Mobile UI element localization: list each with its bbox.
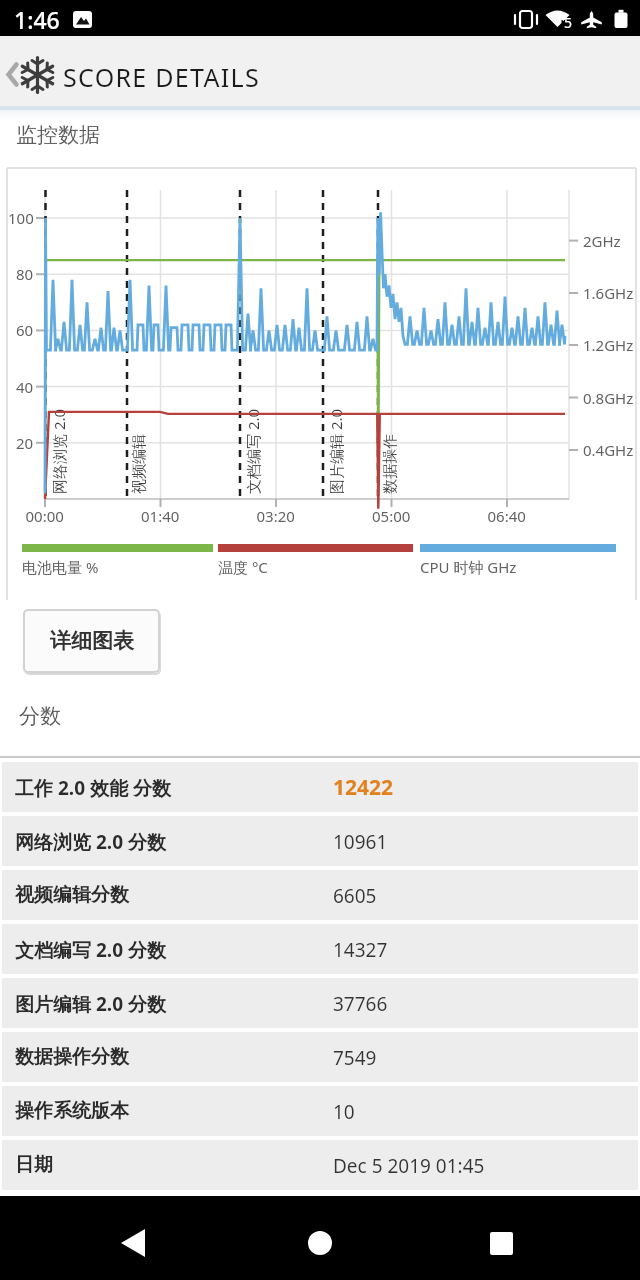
button[interactable] xyxy=(2,1032,638,1082)
staticText: 图片编辑 2.0 分数 xyxy=(15,991,166,1017)
staticText: Dec 5 2019 01:45 xyxy=(333,1153,485,1179)
staticText: 监控数据 xyxy=(16,122,100,148)
staticText: 视频编辑分数 xyxy=(15,883,129,907)
staticText: 数据操作分数 xyxy=(15,1045,129,1069)
staticText: 1:46 xyxy=(14,4,60,35)
button[interactable] xyxy=(2,978,638,1028)
staticText: 5 xyxy=(564,13,573,32)
staticText: 6605 xyxy=(333,883,377,909)
staticText: SCORE DETAILS xyxy=(63,60,260,94)
button[interactable] xyxy=(2,870,638,920)
staticText: 工作 2.0 效能 分数 xyxy=(15,775,171,801)
staticText: 10961 xyxy=(333,829,388,855)
staticText: 网络浏览 2.0 分数 xyxy=(15,829,166,855)
staticText: 37766 xyxy=(333,991,388,1017)
button[interactable] xyxy=(2,1140,638,1190)
staticText: 详细图表 xyxy=(50,628,134,654)
button[interactable] xyxy=(2,1086,638,1136)
staticText: 分数 xyxy=(19,703,61,729)
staticText: 7549 xyxy=(333,1045,377,1071)
staticText: 操作系统版本 xyxy=(15,1099,129,1123)
button[interactable] xyxy=(468,1212,534,1272)
button[interactable] xyxy=(2,924,638,974)
staticText: 10 xyxy=(333,1099,355,1125)
button[interactable] xyxy=(287,1212,353,1272)
staticText: 温度 °C xyxy=(218,557,268,577)
staticText: 文档编写 2.0 分数 xyxy=(15,937,166,963)
button[interactable] xyxy=(0,52,24,98)
button[interactable] xyxy=(2,762,638,812)
button[interactable] xyxy=(2,816,638,866)
button[interactable]: 详细图表 xyxy=(23,609,160,673)
button[interactable] xyxy=(100,1212,166,1272)
staticText: 12422 xyxy=(333,773,394,802)
staticText: CPU 时钟 GHz xyxy=(420,557,517,577)
staticText: 日期 xyxy=(15,1153,53,1177)
staticText: 电池电量 % xyxy=(22,557,99,577)
staticText: 14327 xyxy=(333,937,388,963)
